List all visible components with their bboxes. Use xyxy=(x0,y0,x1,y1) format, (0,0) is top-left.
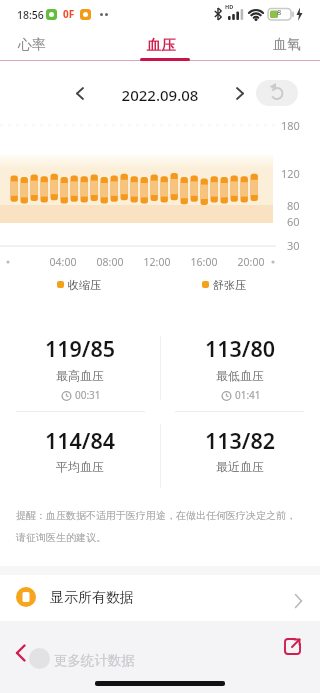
staticText: 8 xyxy=(277,7,282,17)
button[interactable]: 血压 xyxy=(136,33,186,57)
staticText: 120 xyxy=(281,166,300,181)
staticText: 12:00 xyxy=(142,255,172,269)
staticText: 30 xyxy=(287,238,300,253)
staticText: 显示所有数据 xyxy=(50,589,134,607)
staticText: 04:00 xyxy=(48,255,78,269)
staticText: 113/80 xyxy=(176,334,304,363)
button[interactable] xyxy=(74,87,86,100)
staticText: 血氧 xyxy=(263,36,311,54)
button[interactable] xyxy=(234,87,246,100)
staticText: HD xyxy=(225,3,234,10)
staticText: 2022.09.08 xyxy=(120,85,200,105)
button[interactable] xyxy=(283,637,302,656)
staticText: 80 xyxy=(287,198,300,213)
button[interactable]: 血氧 xyxy=(263,33,311,57)
staticText: 最低血压 xyxy=(176,368,304,383)
staticText: 最高血压 xyxy=(16,368,144,383)
staticText: 血压 xyxy=(136,36,186,54)
staticText: 60 xyxy=(287,214,300,229)
staticText: 请征询医生的建议。 xyxy=(16,531,106,544)
staticText: 16:00 xyxy=(189,255,219,269)
staticText: 更多统计数据 xyxy=(54,652,135,669)
button[interactable] xyxy=(14,644,28,663)
staticText: 平均血压 xyxy=(16,459,144,474)
staticText: 180 xyxy=(281,118,300,133)
staticText: 114/84 xyxy=(16,426,144,455)
staticText: 08:00 xyxy=(95,255,125,269)
staticText: 0F xyxy=(63,7,75,21)
button[interactable]: 显示所有数据 xyxy=(0,575,320,621)
staticText: 119/85 xyxy=(16,334,144,363)
staticText: 收缩压 xyxy=(68,278,101,292)
staticText: 最近血压 xyxy=(176,459,304,474)
staticText: 18:56 xyxy=(17,8,44,22)
staticText: 00:31 xyxy=(75,388,101,402)
staticText: 01:41 xyxy=(235,388,261,402)
button[interactable] xyxy=(256,80,298,106)
button[interactable]: 心率 xyxy=(8,33,56,57)
staticText: 舒张压 xyxy=(213,278,246,292)
staticText: 113/82 xyxy=(176,426,304,455)
staticText: 心率 xyxy=(8,36,56,54)
staticText: 提醒：血压数据不适用于医疗用途，在做出任何医疗决定之前， xyxy=(16,509,296,522)
staticText: 20:00 xyxy=(236,255,266,269)
